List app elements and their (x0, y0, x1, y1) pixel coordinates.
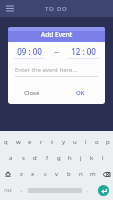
button[interactable]: Space (28, 186, 82, 194)
button[interactable]: , (16, 182, 28, 198)
button[interactable]: z (15, 166, 27, 182)
button[interactable]: Close (8, 86, 56, 100)
button[interactable]: t (47, 133, 58, 150)
staticText: g (57, 154, 61, 162)
staticText: e (28, 138, 32, 146)
staticText: h (68, 154, 72, 162)
staticText: OK (76, 89, 85, 97)
button[interactable]: w (12, 133, 24, 150)
button[interactable]: v (51, 166, 63, 182)
button[interactable]: f (41, 150, 53, 166)
staticText: x (31, 170, 35, 178)
button[interactable]: m (87, 166, 99, 182)
staticText: Close (24, 89, 40, 97)
staticText: l (102, 154, 104, 162)
staticText: . (87, 187, 89, 193)
staticText: ?123 (4, 188, 12, 193)
staticText: TO DO (45, 5, 68, 13)
staticText: s (22, 154, 25, 162)
button[interactable]: Backspace (99, 166, 113, 182)
button[interactable]: j (75, 150, 86, 166)
button[interactable]: n (75, 166, 87, 182)
button[interactable]: c (39, 166, 51, 182)
button[interactable]: h (64, 150, 75, 166)
staticText: Add Event (41, 30, 73, 39)
button[interactable]: d (29, 150, 41, 166)
button[interactable]: u (69, 133, 80, 150)
button[interactable]: 12 : 00 (61, 46, 105, 59)
button[interactable]: r (36, 133, 47, 150)
staticText: 09 : 00 (17, 46, 42, 57)
staticText: , (21, 187, 23, 193)
staticText: n (79, 170, 83, 178)
staticText: q (4, 138, 8, 146)
button[interactable]: OK (56, 86, 105, 100)
button[interactable]: Enter the event here... (15, 66, 98, 77)
button[interactable]: a (5, 150, 17, 166)
button[interactable]: Shift (0, 166, 15, 182)
staticText: w (16, 138, 21, 146)
button[interactable]: x (27, 166, 39, 182)
button[interactable]: l (97, 150, 108, 166)
staticText: Enter the event here... (15, 66, 78, 74)
staticText: k (90, 154, 94, 162)
staticText: a (9, 154, 13, 162)
staticText: c (44, 170, 47, 178)
staticText: y (62, 138, 66, 146)
staticText: j (80, 154, 82, 162)
button[interactable]: 09 : 00 (8, 46, 51, 59)
button[interactable]: i (80, 133, 91, 150)
staticText: t (51, 138, 54, 146)
staticText: v (55, 170, 59, 178)
staticText: d (33, 154, 37, 162)
staticText: r (40, 138, 43, 146)
button[interactable]: Enter (94, 182, 113, 198)
staticText: m (90, 170, 96, 178)
staticText: f (46, 154, 49, 162)
button[interactable]: b (63, 166, 75, 182)
button[interactable]: e (24, 133, 36, 150)
button[interactable]: g (53, 150, 64, 166)
staticText: o (95, 138, 99, 146)
staticText: p (106, 138, 110, 146)
button[interactable]: k (86, 150, 97, 166)
button[interactable]: p (102, 133, 113, 150)
staticText: u (73, 138, 77, 146)
staticText: 12 : 00 (71, 46, 96, 57)
button[interactable]: o (91, 133, 102, 150)
button[interactable]: s (17, 150, 29, 166)
button[interactable]: q (0, 133, 12, 150)
staticText: i (85, 138, 87, 146)
staticText: b (67, 170, 71, 178)
staticText: z (20, 170, 23, 178)
button[interactable]: Open navigation menu (3, 2, 16, 15)
button[interactable]: ?123 (0, 182, 16, 198)
button[interactable]: y (58, 133, 69, 150)
